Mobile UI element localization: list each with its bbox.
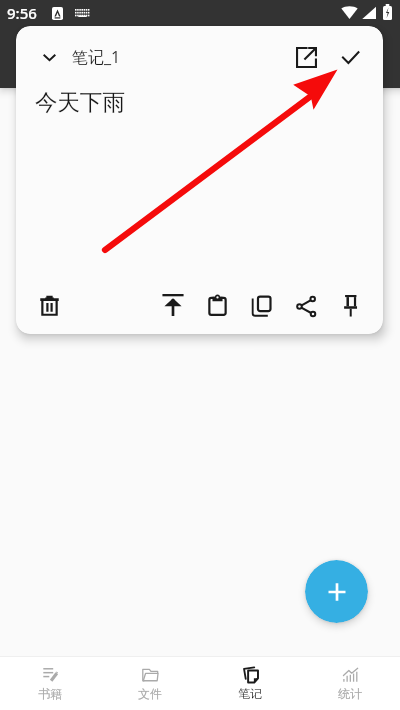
staticText: 统计 <box>338 686 362 701</box>
staticText: 书籍 <box>38 686 62 701</box>
button[interactable]: Delete <box>30 286 68 324</box>
button[interactable]: 统计 <box>300 657 400 710</box>
button[interactable]: 文件 <box>100 657 200 710</box>
button[interactable]: Open in new <box>288 39 324 75</box>
staticText: 9:56 <box>7 3 37 23</box>
button[interactable]: Done <box>332 39 368 75</box>
button[interactable]: Collapse <box>32 40 66 74</box>
staticText: 笔记 <box>238 686 262 701</box>
button[interactable]: Copy <box>242 286 280 324</box>
button[interactable]: Clipboard <box>198 286 236 324</box>
button[interactable]: Move to top <box>154 286 192 324</box>
button[interactable]: Pin <box>332 286 370 324</box>
staticText: 文件 <box>138 686 162 701</box>
button[interactable]: 笔记 <box>200 657 300 710</box>
staticText: 笔记_1 <box>72 46 121 68</box>
button[interactable]: Share <box>287 287 325 325</box>
button[interactable]: 书籍 <box>0 657 100 710</box>
button[interactable]: Add <box>305 560 368 623</box>
staticText: 今天下雨 <box>35 88 125 116</box>
